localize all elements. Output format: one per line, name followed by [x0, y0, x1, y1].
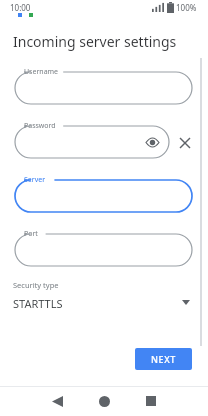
staticText: Security type	[13, 280, 59, 290]
button[interactable]: Username	[15, 64, 192, 104]
staticText: STARTTLS	[13, 296, 63, 311]
staticText: Password	[24, 121, 56, 131]
button[interactable]: Back	[42, 386, 72, 416]
staticText: Username	[24, 67, 59, 77]
staticText: NEXT	[151, 353, 176, 365]
button[interactable]: Port	[15, 226, 192, 266]
staticText: Incoming server settings	[13, 32, 177, 51]
button[interactable]: Recents	[136, 386, 166, 416]
button[interactable]: Password	[15, 118, 169, 158]
staticText: Port	[24, 229, 38, 239]
button[interactable]: Security type	[13, 280, 192, 322]
button[interactable]: NEXT	[135, 348, 192, 370]
staticText: 100%	[176, 2, 197, 13]
button[interactable]: Show password	[143, 133, 161, 151]
button[interactable]: Server	[15, 172, 192, 212]
button[interactable]: Home	[89, 386, 119, 416]
staticText: 10:00	[10, 2, 31, 13]
staticText: Server	[24, 175, 46, 185]
button[interactable]: Clear	[176, 134, 194, 152]
